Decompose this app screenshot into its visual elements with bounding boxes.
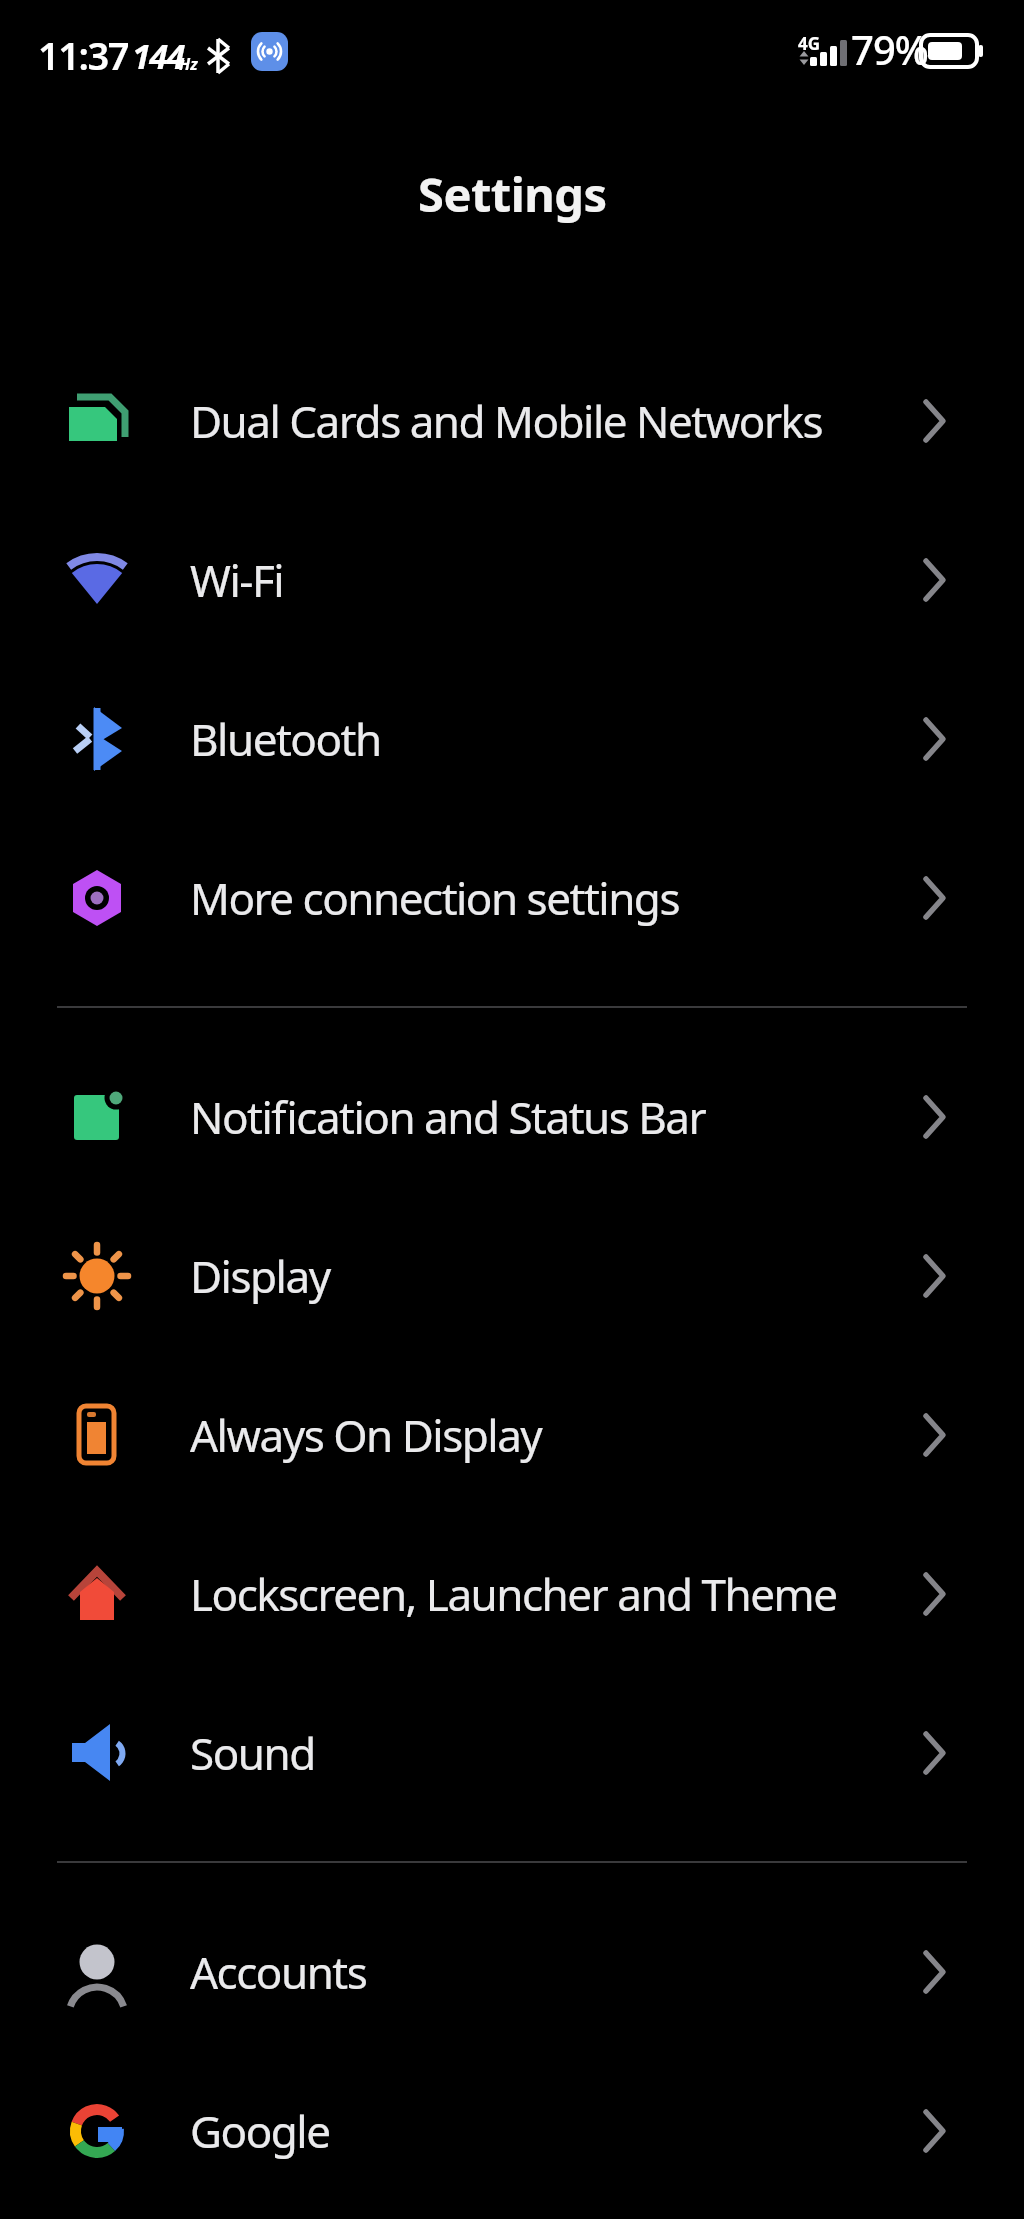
button[interactable]: Bluetooth [0, 659, 1024, 818]
button[interactable]: Display [0, 1196, 1024, 1355]
button[interactable]: Google [0, 2051, 1024, 2210]
staticText: Notification and Status Bar [190, 1087, 706, 1147]
staticText: Google [190, 2101, 330, 2161]
staticText: Always On Display [190, 1405, 542, 1465]
staticText: Lockscreen, Launcher and Theme [190, 1564, 837, 1624]
staticText: Settings [418, 162, 607, 226]
button[interactable]: Sound [0, 1673, 1024, 1832]
staticText: Wi-Fi [190, 550, 284, 610]
staticText: Accounts [190, 1942, 367, 2002]
staticText: Display [190, 1246, 330, 1306]
button[interactable]: Wi-Fi [0, 500, 1024, 659]
staticText: Bluetooth [190, 709, 381, 769]
button[interactable]: Accounts [0, 1892, 1024, 2051]
button[interactable]: More connection settings [0, 818, 1024, 977]
staticText: Hz [179, 53, 198, 75]
staticText: 4G [798, 32, 821, 55]
button[interactable]: Lockscreen, Launcher and Theme [0, 1514, 1024, 1673]
staticText: More connection settings [190, 868, 679, 928]
staticText: Dual Cards and Mobile Networks [190, 391, 823, 451]
button[interactable]: Notification and Status Bar [0, 1037, 1024, 1196]
button[interactable]: Dual Cards and Mobile Networks [0, 341, 1024, 500]
button[interactable]: Always On Display [0, 1355, 1024, 1514]
staticText: 79% [851, 22, 928, 76]
staticText: 144 [132, 33, 184, 79]
staticText: 11:37 [38, 29, 128, 81]
staticText: Sound [190, 1723, 315, 1783]
